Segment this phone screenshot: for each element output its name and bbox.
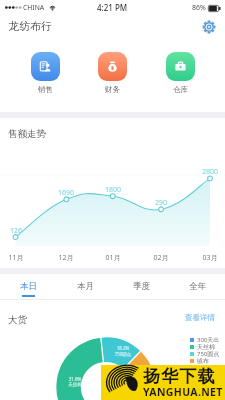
staticText: 全年	[189, 281, 206, 292]
staticText: 12月	[52, 253, 80, 263]
button[interactable]: 季度	[113, 274, 169, 299]
staticText: 财务	[105, 85, 120, 94]
staticText: 2800	[196, 167, 224, 177]
button[interactable]: 本月	[57, 274, 113, 299]
button[interactable]: 本日	[0, 274, 57, 299]
staticText: 天丝棉	[197, 343, 215, 350]
staticText: 大货	[8, 314, 27, 326]
staticText: 查看详情	[185, 313, 215, 322]
staticText: 龙纺布行	[8, 19, 52, 33]
staticText: YANGHUA.NET	[143, 385, 223, 399]
staticText: 86%	[192, 3, 206, 13]
staticText: 本日	[20, 281, 37, 292]
staticText: 300天出	[197, 336, 220, 343]
staticText: 02月	[147, 253, 175, 263]
staticText: 售额走势	[8, 128, 46, 140]
staticText: 290	[147, 198, 175, 208]
button[interactable]: 销售	[23, 52, 68, 94]
staticText: 本月	[77, 281, 94, 292]
button[interactable]: 查看详情	[185, 313, 215, 322]
button[interactable]: 财务	[90, 52, 135, 94]
staticText: 750圆点	[110, 351, 136, 357]
staticText: 1690	[52, 188, 80, 198]
staticText: 扬华下载	[143, 366, 216, 387]
staticText: 4:21 PM	[97, 2, 128, 13]
staticText: 1800	[99, 185, 127, 195]
staticText: 03月	[196, 253, 224, 263]
staticText: 仓库	[173, 85, 188, 94]
button[interactable]: 仓库	[158, 52, 203, 94]
staticText: 126	[2, 226, 30, 236]
staticText: 31.6%	[62, 376, 88, 382]
staticText: 季度	[133, 281, 150, 292]
staticText: 销售	[38, 85, 53, 94]
staticText: 01月	[99, 253, 127, 263]
button[interactable]: Settings	[202, 20, 215, 33]
staticText: 11月	[2, 253, 30, 263]
staticText: 750圆点	[197, 350, 220, 357]
staticText: 天丝棉	[62, 382, 88, 388]
staticText: CHINA	[23, 3, 45, 12]
staticText: 绒布	[197, 357, 209, 364]
staticText: 18.2%	[110, 345, 136, 351]
button[interactable]: 全年	[169, 274, 225, 299]
